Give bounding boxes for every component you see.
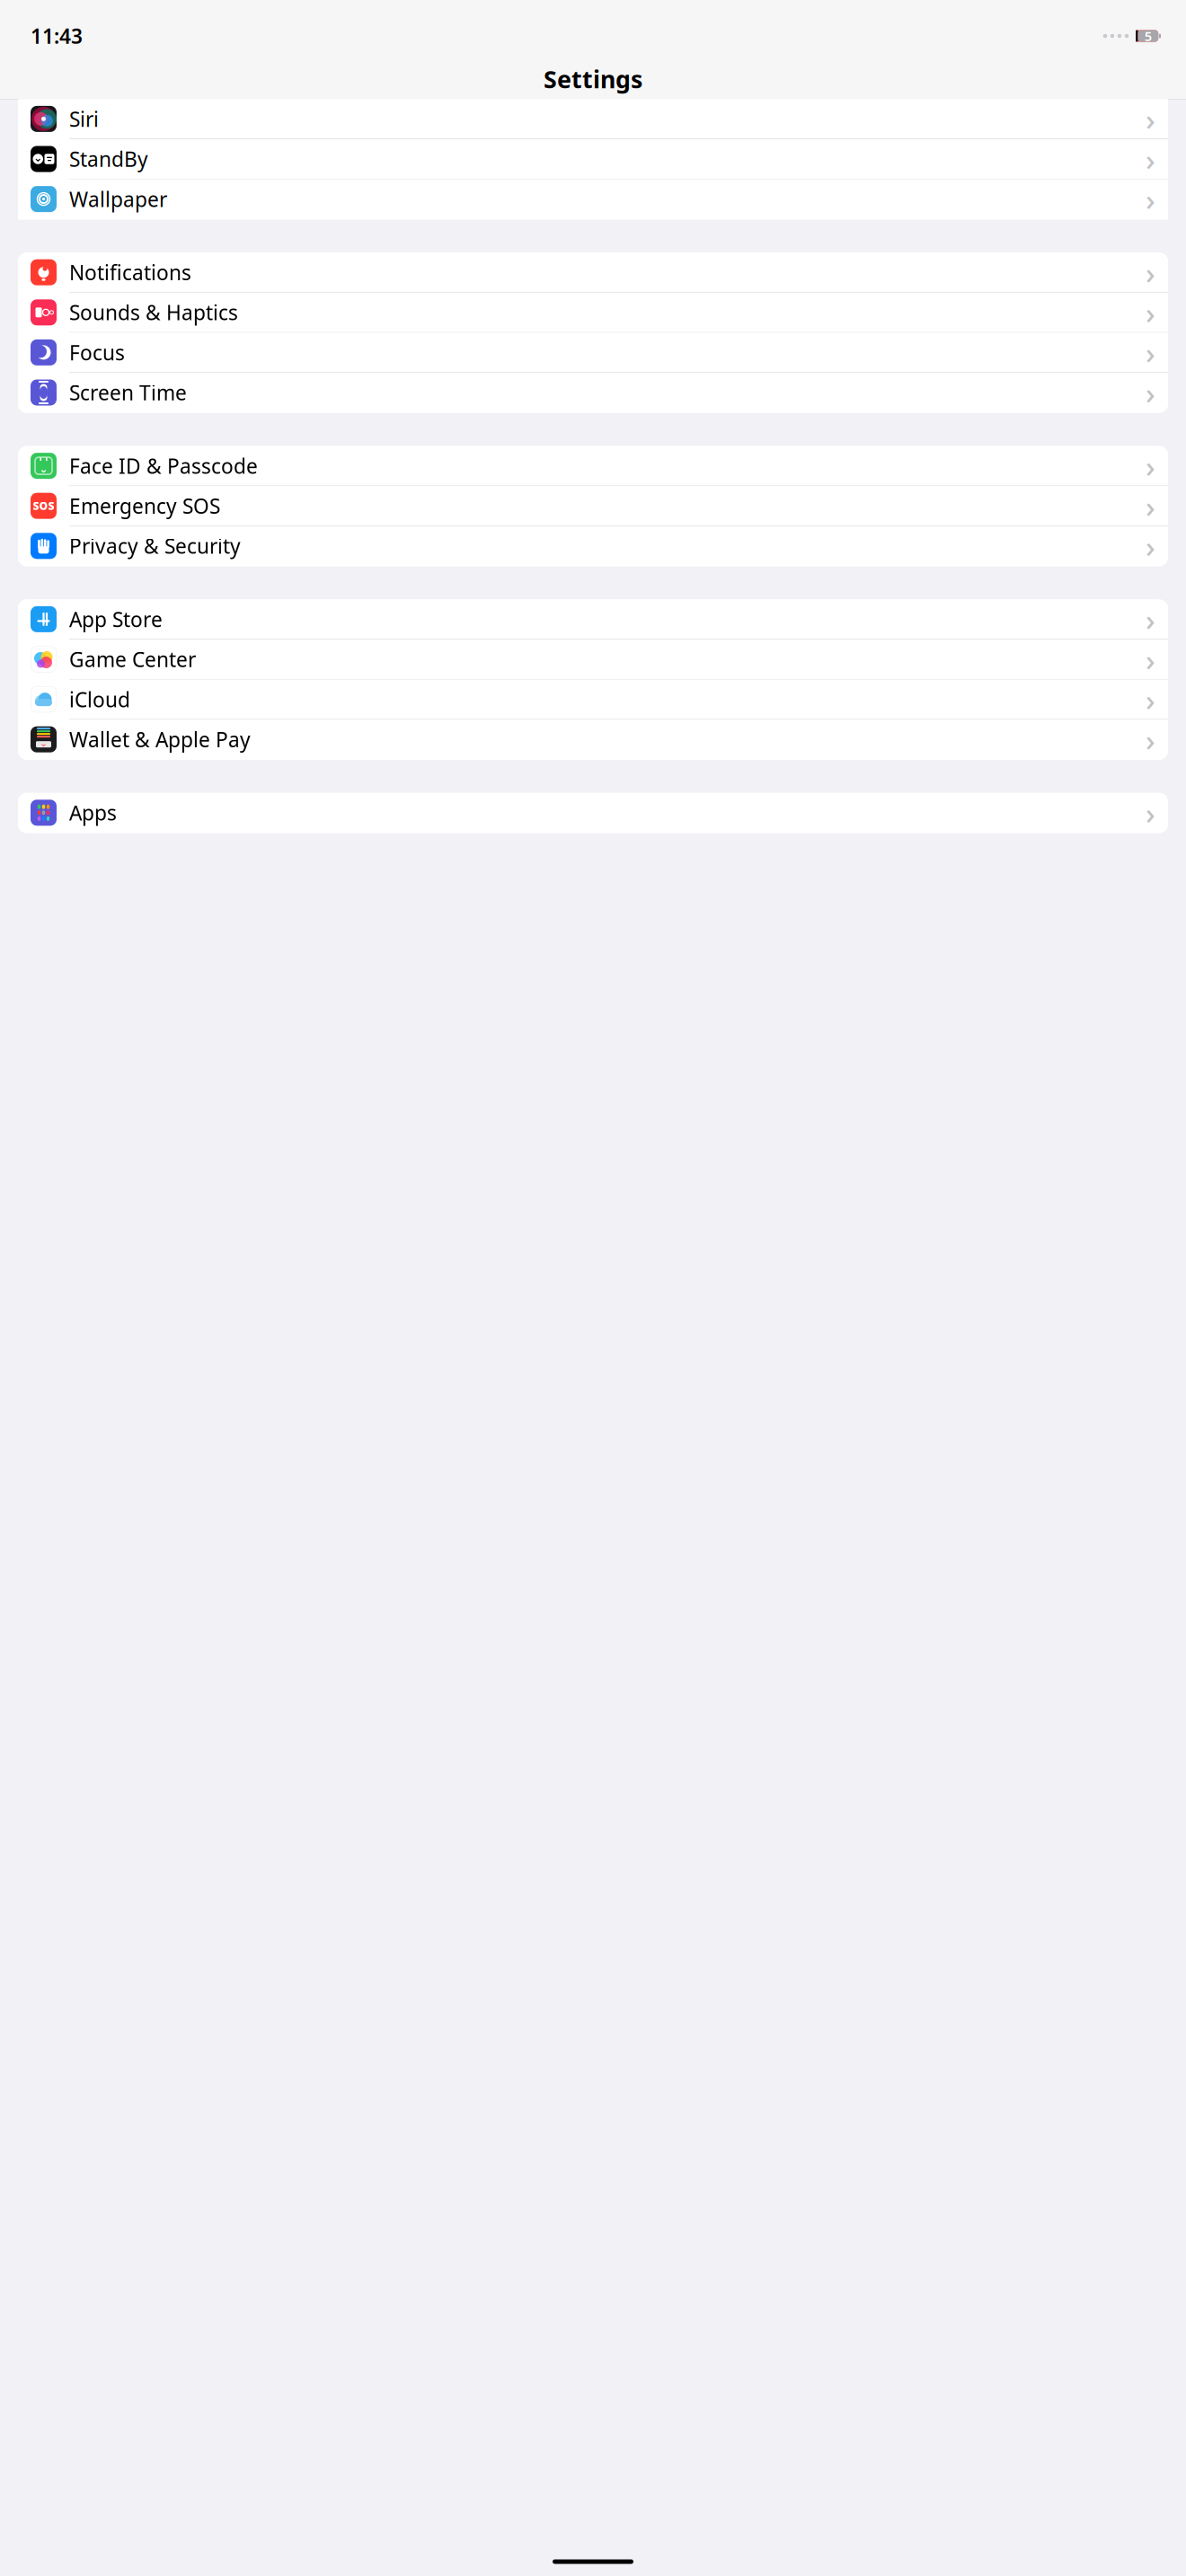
- staticText: Notifications: [69, 259, 191, 286]
- button[interactable]: Screen Time: [18, 373, 1168, 413]
- button[interactable]: Focus: [18, 333, 1168, 373]
- staticText: ›: [1146, 486, 1155, 526]
- staticText: Sounds & Haptics: [69, 299, 238, 326]
- staticText: ›: [1146, 293, 1155, 332]
- staticText: ›: [1146, 793, 1155, 833]
- staticText: StandBy: [69, 145, 148, 172]
- staticText: 5: [1144, 27, 1152, 45]
- staticText: Wallet & Apple Pay: [69, 726, 251, 753]
- staticText: ⌄: [33, 152, 42, 164]
- staticText: SOS: [33, 499, 54, 513]
- staticText: ›: [1146, 333, 1155, 372]
- staticText: 11:43: [31, 22, 83, 49]
- button[interactable]: App Store: [18, 599, 1168, 640]
- staticText: ›: [1146, 720, 1155, 759]
- staticText: Screen Time: [69, 379, 187, 406]
- staticText: ›: [1146, 446, 1155, 486]
- button[interactable]: SOS: [18, 486, 1168, 526]
- button[interactable]: Apps: [18, 793, 1168, 833]
- button[interactable]: ⌄: [18, 446, 1168, 486]
- staticText: Wallpaper: [69, 185, 167, 213]
- staticText: Game Center: [69, 646, 196, 673]
- staticText: ›: [1146, 526, 1155, 566]
- staticText: ›: [1146, 373, 1155, 412]
- staticText: ⌄: [40, 738, 48, 748]
- staticText: Emergency SOS: [69, 492, 220, 519]
- staticText: ›: [1146, 679, 1155, 719]
- button[interactable]: Wallpaper: [18, 179, 1168, 219]
- button[interactable]: Siri: [18, 99, 1168, 139]
- staticText: App Store: [69, 606, 163, 633]
- button[interactable]: Privacy & Security: [18, 526, 1168, 566]
- button[interactable]: ⌄: [18, 139, 1168, 179]
- staticText: Face ID & Passcode: [69, 452, 258, 479]
- button[interactable]: Sounds & Haptics: [18, 293, 1168, 333]
- staticText: Apps: [69, 799, 117, 826]
- staticText: ›: [1146, 252, 1155, 292]
- staticText: ›: [1146, 179, 1155, 219]
- staticText: Settings: [544, 63, 642, 95]
- staticText: ›: [1146, 599, 1155, 639]
- staticText: ›: [1146, 99, 1155, 139]
- button[interactable]: Game Center: [18, 640, 1168, 680]
- staticText: Privacy & Security: [69, 532, 241, 559]
- staticText: Focus: [69, 339, 125, 366]
- staticText: ›: [1146, 139, 1155, 179]
- button[interactable]: ⌄: [18, 720, 1168, 760]
- staticText: Siri: [69, 105, 99, 132]
- button[interactable]: Notifications: [18, 253, 1168, 293]
- staticText: iCloud: [69, 686, 130, 713]
- staticText: ›: [1146, 639, 1155, 679]
- staticText: ⌄: [39, 463, 48, 475]
- button[interactable]: iCloud: [18, 680, 1168, 720]
